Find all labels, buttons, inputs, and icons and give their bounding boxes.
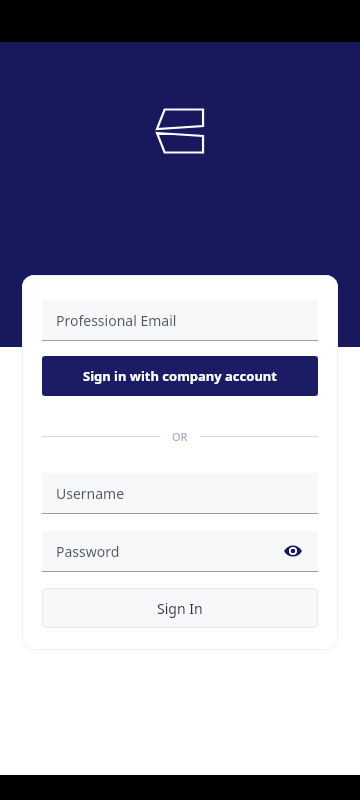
staticText: OR xyxy=(172,429,188,444)
button[interactable]: Sign in with company account xyxy=(42,356,318,396)
button[interactable]: Professional Email xyxy=(42,300,318,341)
staticText: Professional Email xyxy=(56,311,304,330)
staticText: Password xyxy=(56,542,282,561)
staticText: Sign In xyxy=(157,599,203,618)
staticText: Username xyxy=(56,484,304,503)
button[interactable]: Username xyxy=(42,473,318,514)
button[interactable]: Password xyxy=(42,531,318,572)
button[interactable]: Sign In xyxy=(42,588,318,628)
staticText: Sign in with company account xyxy=(83,367,277,385)
button[interactable]: Show password xyxy=(282,540,304,562)
